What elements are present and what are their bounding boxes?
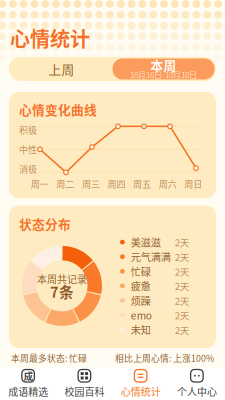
button[interactable]: 本周 bbox=[112, 58, 214, 79]
staticText: 心情变化曲线 bbox=[19, 100, 97, 118]
staticText: 周五 bbox=[133, 177, 151, 190]
staticText: 消极 bbox=[19, 162, 37, 175]
staticText: 周六 bbox=[159, 177, 177, 190]
staticText: 成语精选 bbox=[8, 384, 48, 399]
staticText: 美滋滋 bbox=[131, 235, 161, 249]
staticText: 2天 bbox=[175, 294, 190, 307]
staticText: 心情统计 bbox=[10, 23, 90, 52]
staticText: 2天 bbox=[175, 250, 190, 264]
staticText: 心情统计 bbox=[121, 384, 161, 399]
staticText: 校园百科 bbox=[64, 384, 104, 399]
staticText: 2天 bbox=[175, 323, 190, 337]
button[interactable]: 成 bbox=[0, 368, 56, 400]
staticText: 元气满满 bbox=[131, 249, 171, 264]
staticText: 2天 bbox=[175, 264, 190, 278]
button[interactable]: 个人中心 bbox=[169, 368, 225, 400]
staticText: 2天 bbox=[175, 279, 190, 293]
button[interactable]: 上周 bbox=[10, 58, 112, 79]
staticText: 烦躁 bbox=[131, 293, 151, 308]
staticText: 2天 bbox=[175, 235, 190, 249]
button[interactable]: 校园百科 bbox=[56, 368, 112, 400]
staticText: 周一 bbox=[31, 177, 49, 190]
staticText: 7条 bbox=[50, 281, 74, 302]
staticText: 10月16日-10月10日 bbox=[130, 69, 197, 80]
staticText: 相比上周心情: 上涨100% bbox=[115, 352, 214, 364]
staticText: 2天 bbox=[175, 308, 190, 322]
staticText: 本周 bbox=[150, 56, 176, 74]
staticText: 周日 bbox=[184, 177, 202, 190]
staticText: emo bbox=[131, 308, 152, 322]
staticText: 疲惫 bbox=[131, 279, 151, 293]
staticText: 中性 bbox=[19, 143, 37, 156]
staticText: 未知 bbox=[131, 322, 151, 337]
staticText: 忙碌 bbox=[131, 264, 151, 279]
staticText: 上周 bbox=[48, 60, 74, 78]
staticText: 个人中心 bbox=[177, 384, 217, 399]
staticText: 积极 bbox=[19, 123, 37, 136]
staticText: 周四 bbox=[107, 177, 125, 190]
staticText: 周二 bbox=[56, 177, 74, 190]
staticText: 状态分布 bbox=[19, 214, 71, 233]
staticText: 本周最多状态: 忙碌 bbox=[11, 352, 87, 364]
staticText: 本周共记录 bbox=[37, 272, 87, 286]
staticText: 成 bbox=[24, 369, 33, 382]
staticText: 周三 bbox=[82, 177, 100, 190]
button[interactable]: 心情统计 bbox=[112, 368, 169, 400]
